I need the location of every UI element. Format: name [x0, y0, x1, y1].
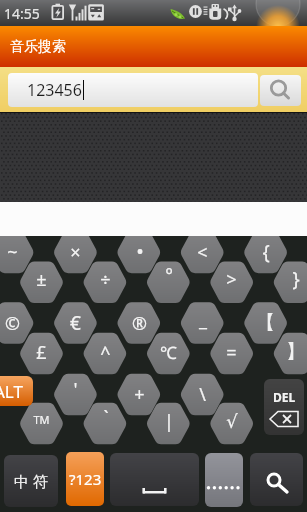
button[interactable]: ` [83, 396, 128, 438]
button[interactable]: 【 [243, 302, 288, 344]
button[interactable]: 音乐搜索 [0, 26, 307, 67]
button[interactable]: = [209, 331, 254, 373]
button[interactable]: + [117, 373, 162, 415]
button[interactable]: Delete [264, 379, 304, 435]
staticText: 】 [286, 340, 305, 364]
button[interactable]: ® [117, 302, 162, 344]
button[interactable]: TM [19, 398, 64, 440]
staticText: ^ [100, 341, 111, 366]
staticText: • [136, 238, 144, 265]
staticText: ℃ [160, 341, 177, 364]
staticText: £ [36, 340, 47, 365]
staticText: ÷ [100, 267, 111, 292]
button[interactable]: < [180, 231, 225, 273]
button[interactable]: Space [110, 453, 199, 506]
button[interactable]: ^ [83, 332, 128, 374]
button[interactable]: ℃ [146, 331, 191, 373]
staticText: = [226, 340, 237, 365]
button[interactable]: 中 符 [4, 455, 58, 507]
staticText: ?123 [69, 469, 102, 489]
button[interactable]: × [53, 231, 98, 273]
button[interactable]: ÷ [83, 258, 128, 300]
staticText: _ [199, 307, 207, 332]
staticText: ® [132, 311, 147, 336]
staticText: 14:55 [4, 4, 40, 23]
button[interactable]: ?123 [66, 452, 104, 506]
staticText: ~ [7, 240, 18, 265]
staticText: ALT [0, 380, 23, 403]
button[interactable]: ~ [0, 231, 35, 273]
staticText: 中 符 [14, 471, 48, 491]
button[interactable]: \ [180, 373, 225, 415]
button[interactable]: £ [19, 331, 64, 373]
button[interactable]: ° [146, 254, 191, 296]
staticText: × [70, 240, 81, 265]
button[interactable]: } [273, 258, 307, 300]
staticText: ' [73, 377, 78, 402]
staticText: > [226, 267, 237, 292]
button[interactable]: © [0, 302, 35, 344]
staticText: 123456 [27, 79, 82, 101]
button[interactable]: > [209, 258, 254, 300]
staticText: √ [226, 411, 238, 432]
button[interactable]: ± [19, 258, 64, 300]
button[interactable]: 】 [273, 331, 307, 373]
button[interactable]: • [117, 230, 162, 272]
staticText: 【 [256, 311, 275, 335]
button[interactable]: √ [209, 400, 254, 442]
staticText: | [164, 409, 174, 434]
button[interactable]: Search [250, 453, 303, 506]
staticText: 音乐搜索 [10, 38, 66, 56]
button[interactable]: | [146, 400, 191, 442]
staticText: { [262, 239, 270, 265]
button[interactable]: € [53, 302, 98, 344]
staticText: © [5, 311, 20, 336]
staticText: DEL [273, 389, 296, 405]
button[interactable]: 123456 [8, 73, 258, 107]
staticText: ` [103, 405, 109, 430]
staticText: < [197, 240, 208, 265]
staticText: ° [165, 263, 173, 288]
button[interactable]: _ [180, 298, 225, 340]
button[interactable]: Search [260, 75, 301, 106]
staticText: } [292, 266, 300, 292]
staticText: + [134, 382, 145, 407]
staticText: € [70, 310, 81, 336]
button[interactable]: More symbols [205, 453, 243, 507]
staticText: TM [33, 412, 50, 427]
staticText: \ [199, 382, 206, 407]
button[interactable]: ' [53, 368, 98, 410]
staticText: ± [36, 267, 47, 292]
button[interactable]: ALT [0, 376, 33, 406]
button[interactable]: { [243, 231, 288, 273]
